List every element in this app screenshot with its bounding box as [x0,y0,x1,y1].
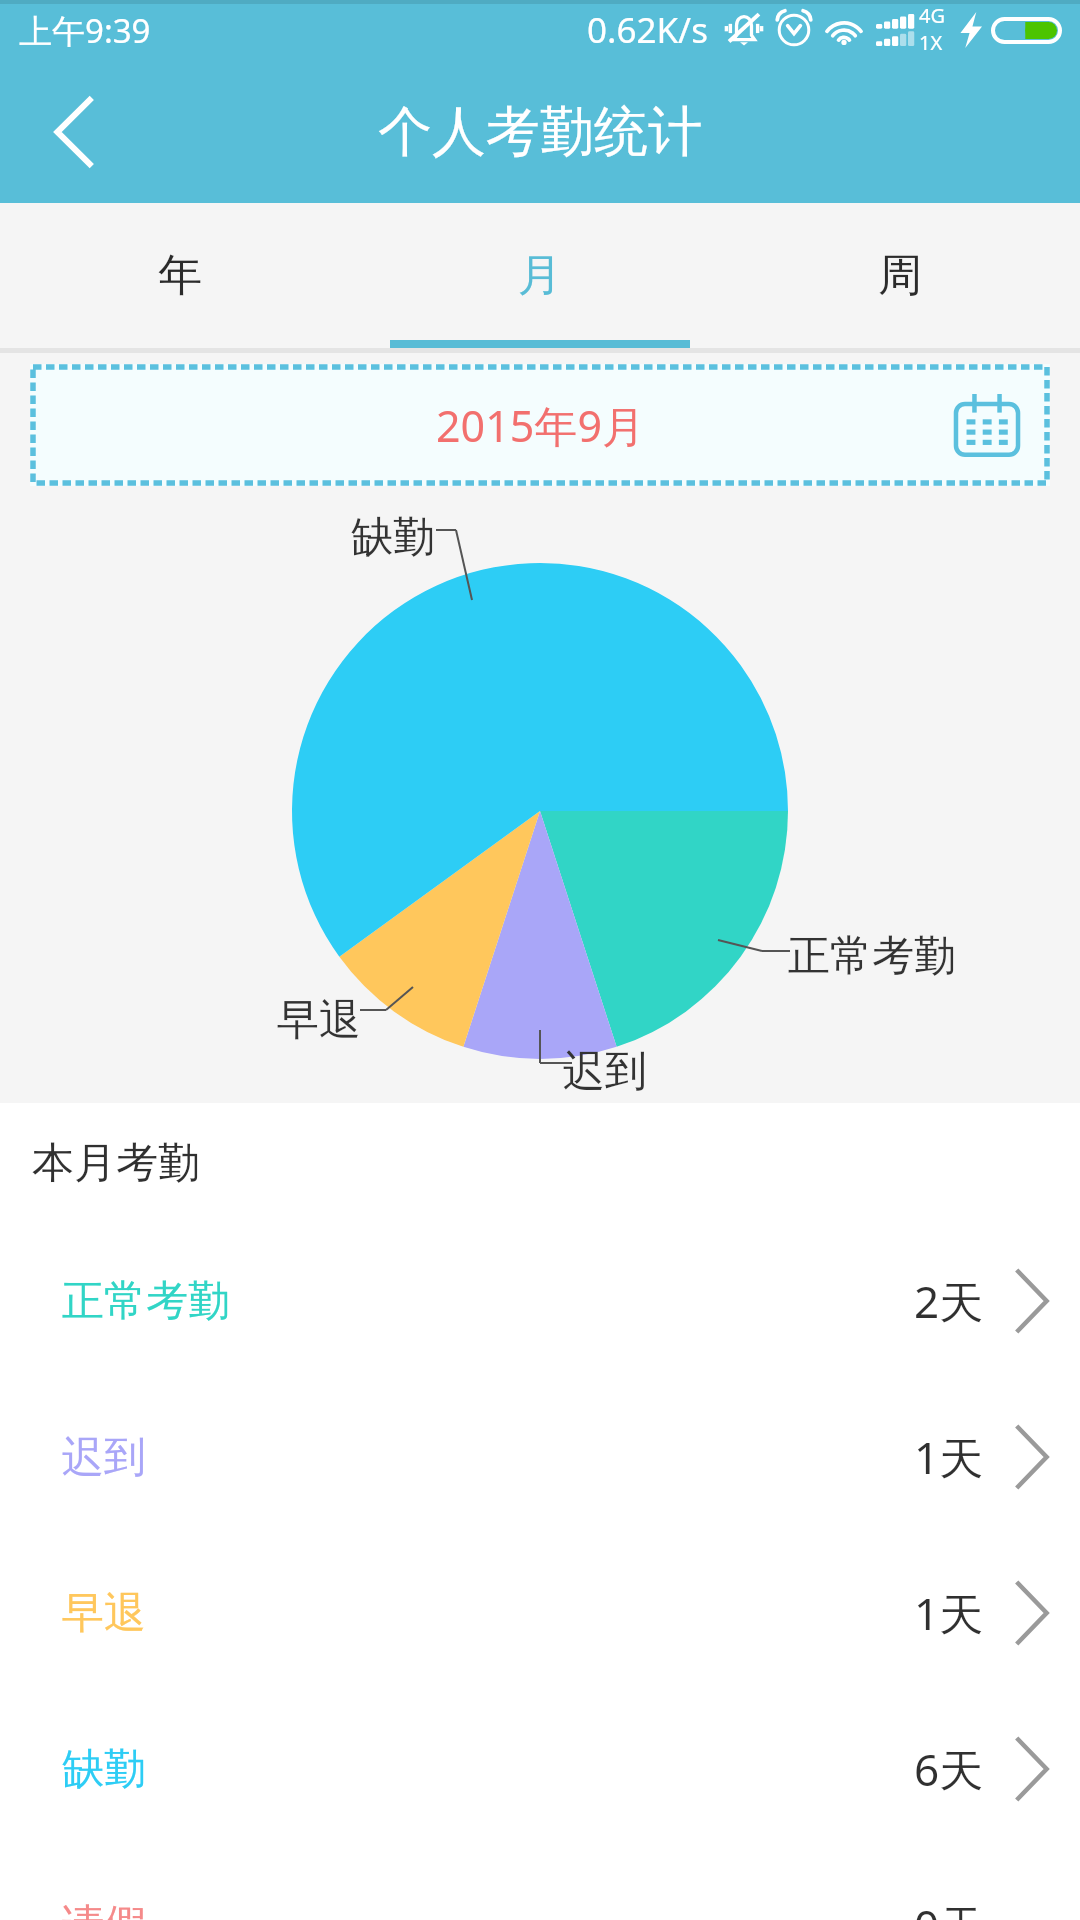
staticText: 迟到 [62,1431,146,1484]
staticText: 1X [919,29,943,56]
button[interactable]: 缺勤 [0,1691,1080,1847]
button[interactable]: 2015年9月 [30,364,1050,486]
staticText: 个人考勤统计 [378,98,702,166]
button[interactable]: Back [0,60,150,203]
staticText: 2015年9月 [436,396,645,455]
staticText: 请假 [62,1899,146,1920]
staticText: 本月考勤 [32,1137,200,1190]
button[interactable]: 年 [0,203,360,348]
staticText: 上午9:39 [19,8,151,53]
staticText: 迟到 [563,1045,647,1098]
staticText: 早退 [62,1587,146,1640]
staticText: 4G [919,2,945,29]
button[interactable]: 早退 [0,1535,1080,1691]
staticText: 缺勤 [62,1743,146,1796]
staticText: 正常考勤 [788,930,956,983]
staticText: 正常考勤 [62,1275,230,1328]
staticText: 1天 [914,1427,984,1487]
staticText: 1天 [914,1583,984,1643]
staticText: 周 [878,248,922,303]
staticText: 早退 [277,994,361,1047]
staticText: 0天 [914,1895,984,1920]
button[interactable]: 请假 [0,1847,1080,1920]
button[interactable]: 迟到 [0,1379,1080,1535]
staticText: 2天 [914,1271,984,1331]
button[interactable]: 正常考勤 [0,1223,1080,1379]
button[interactable]: 周 [720,203,1080,348]
staticText: 月 [518,248,562,303]
staticText: 年 [158,248,202,303]
button[interactable]: 月 [360,203,720,348]
staticText: 0.62K/s [587,6,708,54]
staticText: 6天 [914,1739,984,1799]
staticText: 缺勤 [351,511,435,564]
